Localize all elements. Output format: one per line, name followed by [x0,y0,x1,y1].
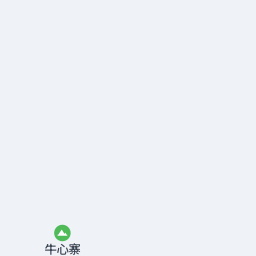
button[interactable]: 牛心寨 national park [42,225,82,256]
staticText: 牛心寨 [44,239,80,256]
